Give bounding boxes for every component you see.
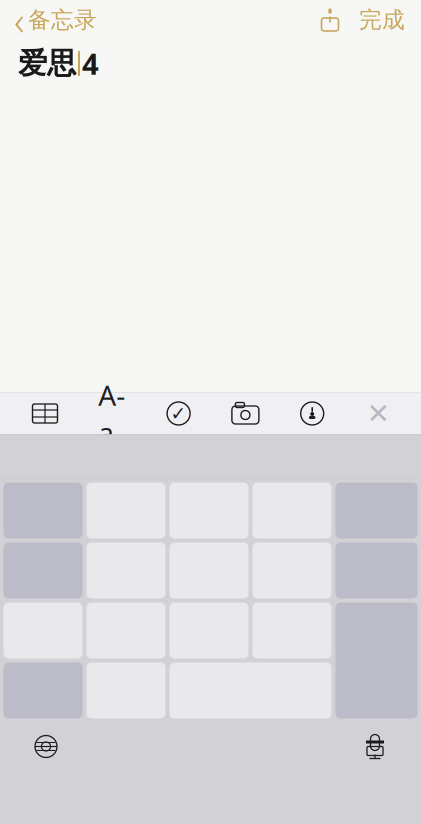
staticText: 4 [82, 44, 99, 83]
staticText: ✕ [366, 398, 389, 429]
staticText: ‹ [14, 0, 25, 46]
button[interactable]: ‹ [4, 1, 107, 39]
button[interactable]: Checklist [164, 400, 194, 426]
button[interactable]: Format [96, 400, 128, 426]
staticText: 备忘录 [28, 6, 97, 34]
button[interactable]: Next keyboard [17, 722, 75, 770]
button[interactable]: Camera [229, 400, 261, 426]
button[interactable]: Hide toolbar [363, 400, 393, 426]
button[interactable]: Markup [297, 400, 327, 426]
staticText: ✓ [171, 403, 187, 424]
staticText: 完成 [359, 6, 405, 34]
staticText: Aa [98, 376, 125, 451]
button[interactable]: 完成 [347, 1, 417, 39]
staticText: 爱思 [18, 45, 76, 81]
button[interactable]: Table [30, 400, 60, 426]
button[interactable]: Dictation [346, 722, 404, 770]
button[interactable]: Share [313, 3, 347, 37]
